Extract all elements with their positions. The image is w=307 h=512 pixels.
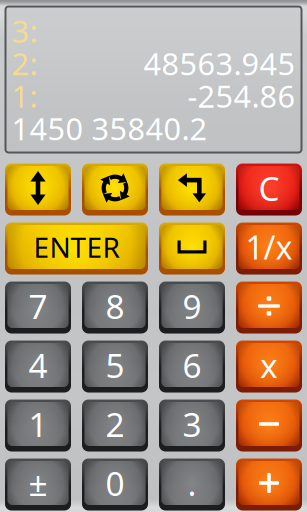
- button[interactable]: [236, 458, 302, 510]
- button[interactable]: Roll stack: [82, 163, 148, 215]
- staticText: C: [258, 166, 279, 210]
- button[interactable]: 7: [5, 281, 71, 333]
- staticText: 9: [182, 284, 201, 328]
- staticText: 7: [28, 284, 47, 328]
- button[interactable]: 9: [159, 281, 225, 333]
- staticText: 1/x: [245, 226, 292, 268]
- staticText: x: [260, 343, 278, 387]
- button[interactable]: 4: [5, 340, 71, 392]
- staticText: ENTER: [33, 228, 119, 266]
- staticText: 0: [105, 461, 124, 505]
- button[interactable]: 1: [5, 399, 71, 451]
- staticText: 5: [105, 343, 124, 387]
- staticText: 2: [105, 402, 124, 446]
- button[interactable]: Space: [159, 222, 225, 274]
- button[interactable]: 3: [159, 399, 225, 451]
- staticText: 2:: [11, 43, 37, 84]
- staticText: 6: [182, 343, 201, 387]
- button[interactable]: Drop: [159, 163, 225, 215]
- button[interactable]: 8: [82, 281, 148, 333]
- staticText: 8: [105, 284, 124, 328]
- button[interactable]: Swap X and Y: [5, 163, 71, 215]
- button[interactable]: 0: [82, 458, 148, 510]
- staticText: 1:: [11, 75, 37, 116]
- staticText: ±: [28, 461, 47, 505]
- button[interactable]: x: [236, 340, 302, 392]
- staticText: 1: [28, 402, 47, 446]
- button[interactable]: [236, 281, 302, 333]
- staticText: 1450 35840.2: [11, 108, 207, 149]
- staticText: 3:: [11, 10, 37, 51]
- staticText: 4: [28, 343, 47, 387]
- button[interactable]: 5: [82, 340, 148, 392]
- button[interactable]: 6: [159, 340, 225, 392]
- button[interactable]: [236, 399, 302, 451]
- button[interactable]: ±: [5, 458, 71, 510]
- button[interactable]: .: [159, 458, 225, 510]
- button[interactable]: ENTER: [5, 222, 148, 274]
- staticText: .: [187, 461, 196, 505]
- staticText: 48563.945: [143, 43, 295, 84]
- staticText: -254.86: [187, 75, 295, 116]
- button[interactable]: 2: [82, 399, 148, 451]
- button[interactable]: C: [236, 163, 302, 215]
- staticText: 3: [182, 402, 201, 446]
- button[interactable]: 1/x: [236, 222, 302, 274]
